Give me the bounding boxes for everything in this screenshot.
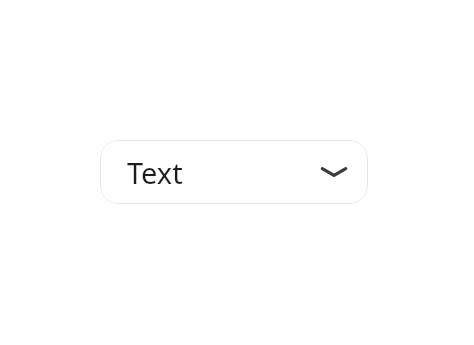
staticText: Text (127, 153, 183, 192)
other: Expand dropdown (321, 159, 347, 185)
button[interactable]: Text (100, 140, 368, 204)
